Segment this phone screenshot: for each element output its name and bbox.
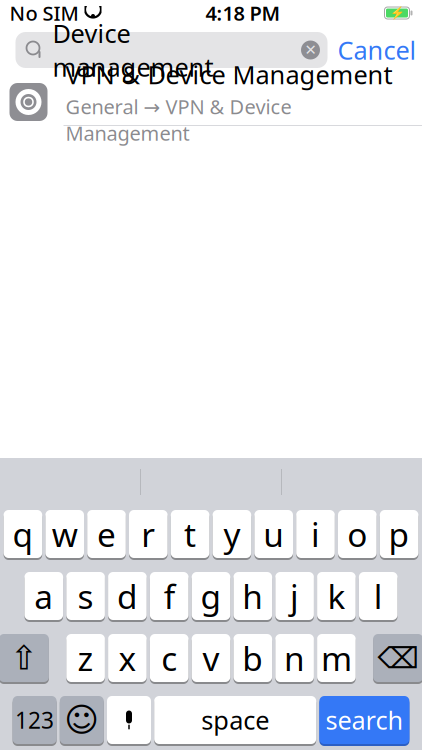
staticText: g <box>200 574 221 618</box>
staticText: j <box>290 574 299 618</box>
button[interactable]: Delete <box>373 634 422 684</box>
button[interactable]: 123 <box>13 696 57 746</box>
staticText: k <box>327 574 345 618</box>
staticText: General → VPN & Device Management <box>65 93 291 146</box>
staticText: d <box>117 574 138 618</box>
staticText: space <box>201 703 269 737</box>
staticText: w <box>52 512 78 556</box>
staticText: ⇧ <box>10 639 38 677</box>
staticText: ⚡ <box>389 6 404 20</box>
button[interactable]: p <box>380 510 418 560</box>
staticText: n <box>284 636 305 680</box>
button[interactable]: k <box>317 572 356 622</box>
button[interactable]: u <box>254 510 293 560</box>
button[interactable]: t <box>171 510 209 560</box>
button[interactable]: v <box>192 634 230 684</box>
button[interactable]: j <box>275 572 314 622</box>
staticText: u <box>263 512 284 556</box>
staticText: 123 <box>15 705 54 735</box>
button[interactable]: b <box>233 634 272 684</box>
staticText: ☺ <box>64 701 99 739</box>
staticText: i <box>311 512 320 556</box>
button[interactable]: Emoji <box>60 696 104 746</box>
staticText: o <box>347 512 367 556</box>
staticText: x <box>118 636 136 680</box>
staticText: t <box>184 512 196 556</box>
staticText: r <box>141 512 155 556</box>
button[interactable]: d <box>108 572 147 622</box>
button[interactable]: Cancel <box>327 32 422 68</box>
staticText: f <box>164 574 175 618</box>
staticText: VPN & Device Management <box>65 58 392 91</box>
button[interactable]: i <box>296 510 335 560</box>
button[interactable]: c <box>150 634 188 684</box>
staticText: l <box>374 574 383 618</box>
button[interactable]: a <box>24 572 63 622</box>
button[interactable]: n <box>275 634 314 684</box>
button[interactable]: x <box>108 634 147 684</box>
staticText: search <box>325 703 403 737</box>
button[interactable]: g <box>192 572 230 622</box>
staticText: ⌫ <box>378 641 419 675</box>
staticText: Cancel <box>337 33 416 67</box>
button[interactable]: s <box>66 572 105 622</box>
staticText: m <box>321 636 352 680</box>
button[interactable]: z <box>66 634 105 684</box>
button[interactable]: m <box>317 634 356 684</box>
button[interactable]: o <box>338 510 377 560</box>
button[interactable]: VPN & Device Management <box>0 76 422 126</box>
button[interactable]: r <box>129 510 168 560</box>
button[interactable]: q <box>4 510 42 560</box>
staticText: s <box>78 574 94 618</box>
button[interactable]: h <box>233 572 272 622</box>
staticText: v <box>202 636 219 680</box>
button[interactable]: l <box>359 572 397 622</box>
staticText: b <box>242 636 263 680</box>
button[interactable]: y <box>213 510 251 560</box>
button[interactable]: f <box>150 572 188 622</box>
staticText: 4:18 PM <box>205 0 280 26</box>
button[interactable]: search <box>319 696 409 746</box>
staticText: e <box>97 512 116 556</box>
button[interactable]: e <box>87 510 126 560</box>
staticText: No SIM <box>9 0 78 26</box>
staticText: Device management <box>52 16 213 84</box>
staticText: c <box>161 636 177 680</box>
staticText: q <box>12 512 33 556</box>
button[interactable]: Dictation <box>107 696 151 746</box>
staticText: z <box>78 636 94 680</box>
button[interactable]: Shift <box>0 634 49 684</box>
button[interactable]: space <box>154 696 316 746</box>
staticText: p <box>389 512 410 556</box>
staticText: y <box>223 512 240 556</box>
staticText: ✕ <box>304 42 316 58</box>
staticText: h <box>242 574 263 618</box>
button[interactable]: Clear text <box>293 32 327 68</box>
button[interactable]: w <box>45 510 84 560</box>
staticText: a <box>34 574 53 618</box>
